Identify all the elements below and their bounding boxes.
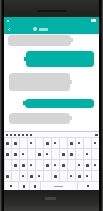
button[interactable] bbox=[67, 149, 75, 159]
button[interactable] bbox=[35, 160, 43, 170]
button[interactable] bbox=[35, 138, 43, 148]
button[interactable] bbox=[67, 171, 75, 181]
button[interactable] bbox=[35, 149, 43, 159]
button[interactable] bbox=[27, 138, 35, 148]
button[interactable] bbox=[59, 149, 67, 159]
button[interactable] bbox=[9, 73, 70, 91]
button[interactable] bbox=[59, 138, 67, 148]
button[interactable] bbox=[83, 160, 91, 170]
button[interactable]: Emoji category bbox=[9, 132, 13, 137]
button[interactable]: Emoji category bbox=[13, 132, 17, 137]
button[interactable] bbox=[43, 171, 51, 181]
button[interactable] bbox=[19, 149, 27, 159]
button[interactable] bbox=[91, 138, 99, 148]
button[interactable]: Emoji category bbox=[21, 132, 25, 137]
button[interactable] bbox=[27, 160, 35, 170]
button[interactable] bbox=[27, 171, 35, 181]
button[interactable] bbox=[75, 149, 83, 159]
button[interactable] bbox=[43, 138, 51, 148]
button[interactable] bbox=[19, 160, 27, 170]
button[interactable]: Space bbox=[40, 182, 77, 190]
button[interactable] bbox=[83, 149, 91, 159]
button[interactable] bbox=[51, 138, 59, 148]
button[interactable] bbox=[91, 171, 99, 181]
button[interactable]: Symbols bbox=[4, 182, 18, 190]
button[interactable] bbox=[51, 149, 59, 159]
button[interactable] bbox=[91, 160, 99, 170]
button[interactable] bbox=[59, 171, 67, 181]
button[interactable] bbox=[11, 149, 19, 159]
button[interactable] bbox=[43, 149, 51, 159]
button[interactable] bbox=[91, 149, 99, 159]
button[interactable] bbox=[19, 138, 27, 148]
button[interactable] bbox=[83, 171, 91, 181]
button[interactable] bbox=[8, 35, 71, 46]
button[interactable] bbox=[25, 99, 94, 108]
button[interactable] bbox=[51, 160, 59, 170]
button[interactable] bbox=[33, 27, 48, 31]
button[interactable]: Emoji category bbox=[25, 132, 29, 137]
button[interactable] bbox=[59, 160, 67, 170]
button[interactable]: Emoji category bbox=[29, 132, 33, 137]
button[interactable]: Backspace bbox=[93, 132, 99, 137]
button[interactable]: Emoji bbox=[18, 182, 29, 190]
button[interactable] bbox=[27, 149, 35, 159]
button[interactable]: Emoji category bbox=[17, 132, 21, 137]
button[interactable] bbox=[43, 160, 51, 170]
button[interactable]: Back bbox=[4, 24, 15, 34]
button[interactable] bbox=[51, 171, 59, 181]
button[interactable] bbox=[11, 160, 19, 170]
button[interactable] bbox=[67, 138, 75, 148]
button[interactable] bbox=[83, 138, 91, 148]
button[interactable] bbox=[4, 138, 11, 148]
button[interactable] bbox=[9, 113, 70, 124]
button[interactable]: Enter bbox=[77, 182, 99, 190]
button[interactable] bbox=[4, 149, 11, 159]
button[interactable] bbox=[75, 171, 83, 181]
button[interactable] bbox=[26, 51, 94, 67]
button[interactable] bbox=[75, 138, 83, 148]
button[interactable]: Voice input bbox=[29, 182, 40, 190]
button[interactable] bbox=[11, 171, 19, 181]
button[interactable] bbox=[75, 160, 83, 170]
button[interactable]: Emoji category bbox=[5, 132, 9, 137]
button[interactable] bbox=[11, 138, 19, 148]
button[interactable] bbox=[35, 171, 43, 181]
button[interactable] bbox=[67, 160, 75, 170]
button[interactable] bbox=[4, 171, 11, 181]
button[interactable] bbox=[19, 171, 27, 181]
button[interactable] bbox=[4, 160, 11, 170]
